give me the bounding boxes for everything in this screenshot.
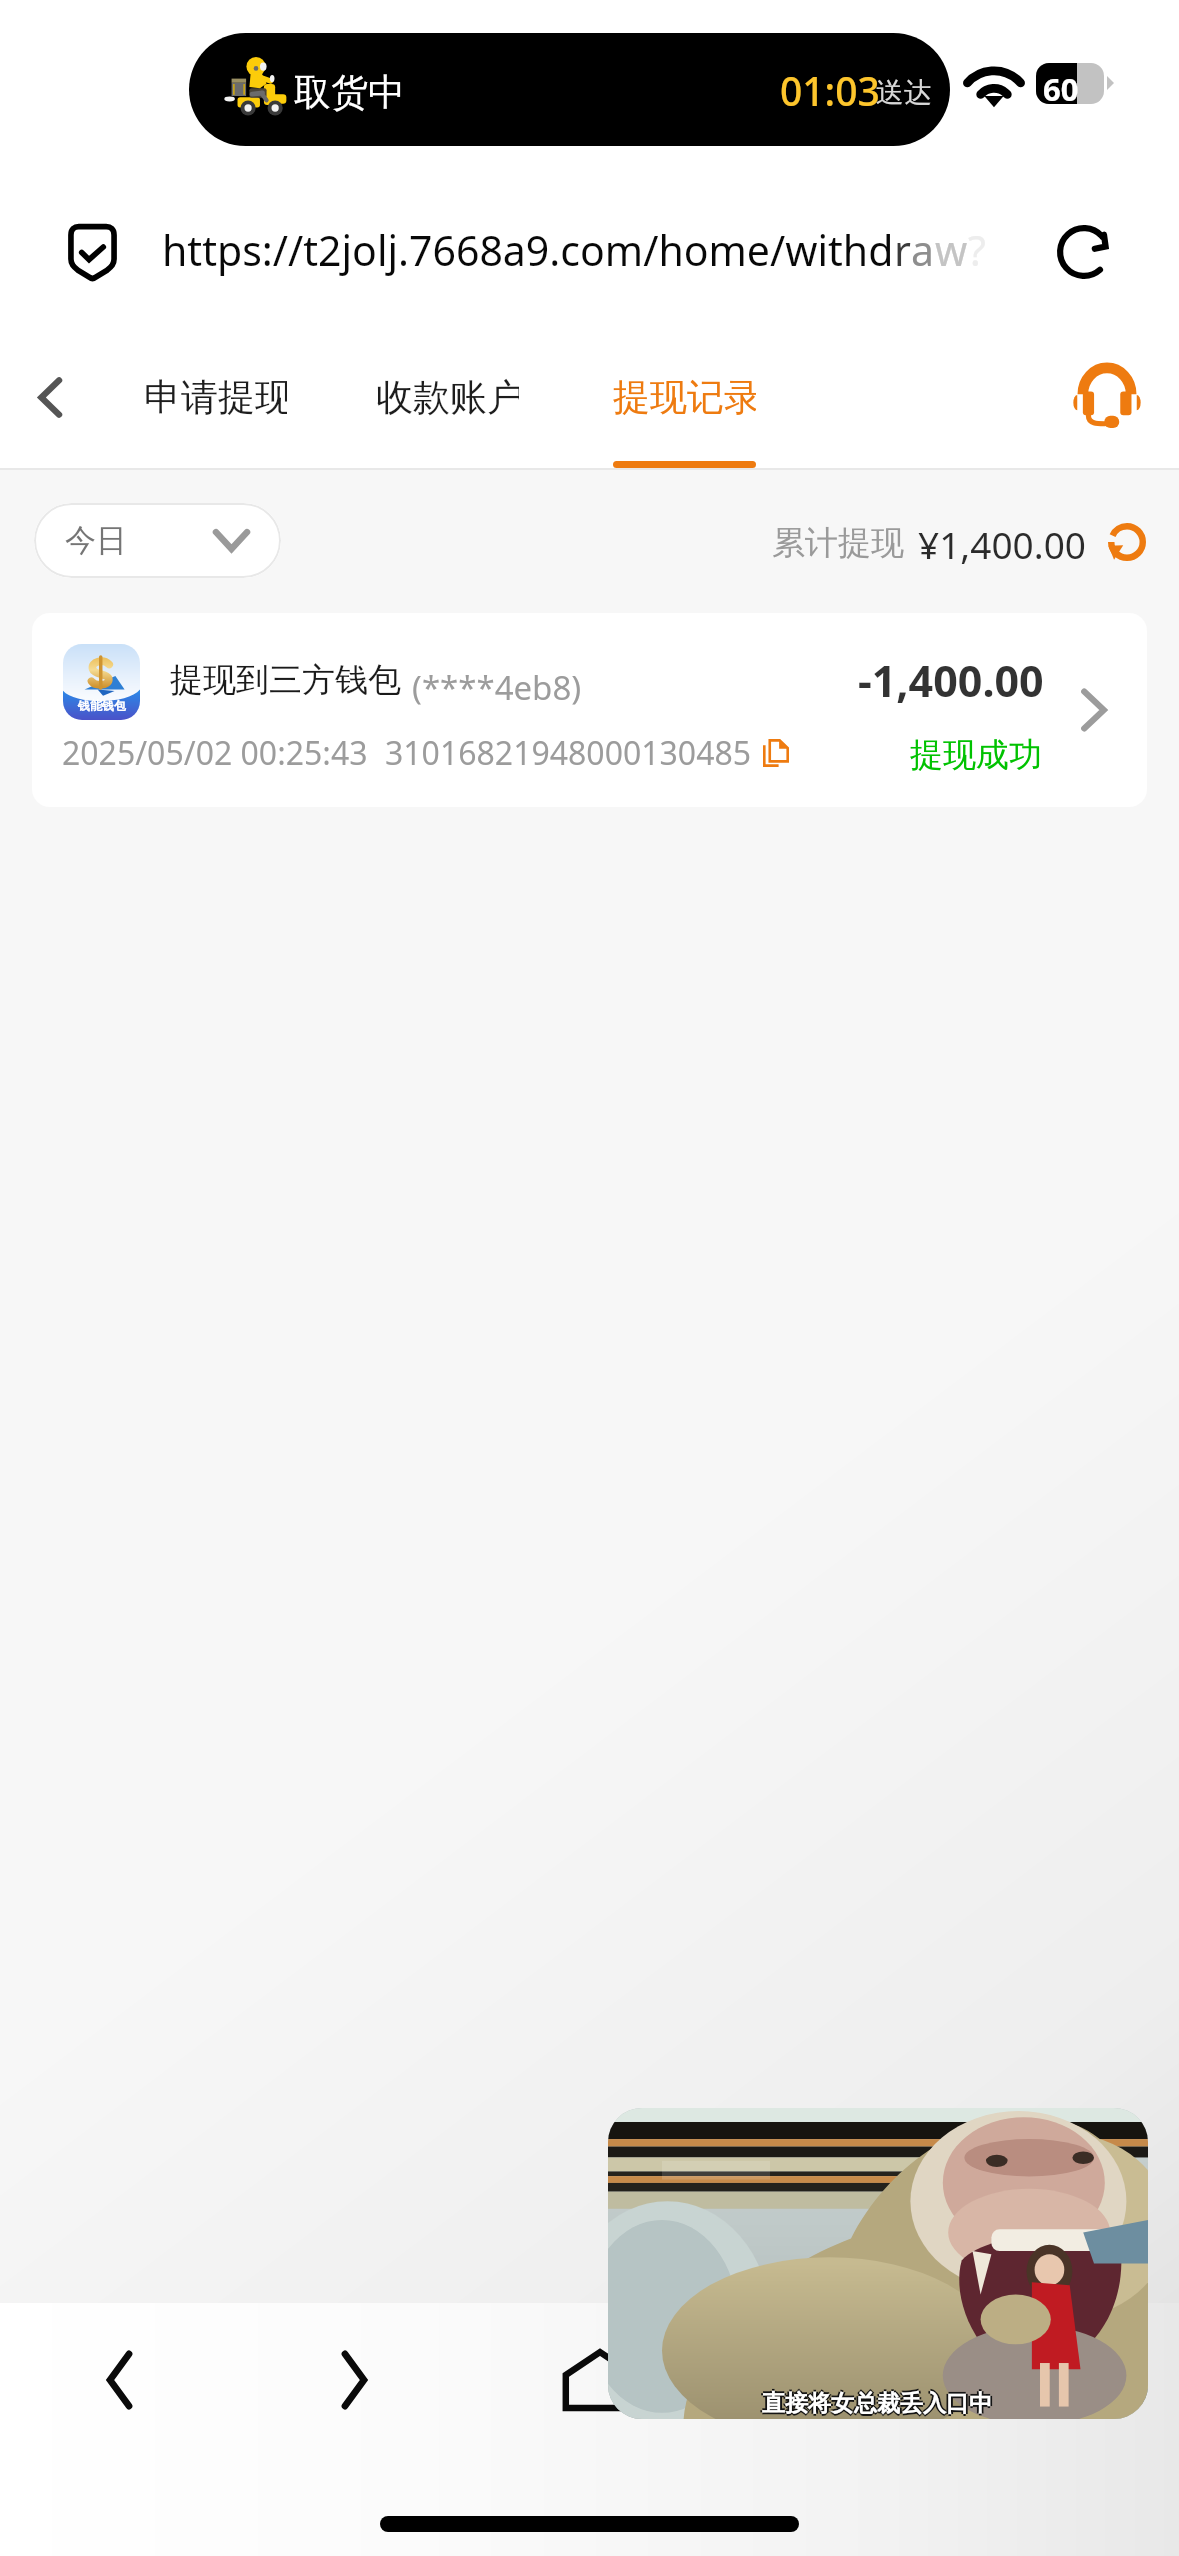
staticText: 取货中 [294,69,405,116]
staticText: 提现成功 [910,734,1042,776]
staticText: 2025/05/02 00:25:43 [62,731,368,775]
staticText: 累计提现 [772,522,904,564]
staticText: 今日 [65,521,127,560]
button[interactable]: Back [2,349,98,445]
staticText: w [935,222,968,278]
staticText: 收款账户 [376,374,519,421]
button[interactable]: Back [59,2320,179,2440]
staticText: 申请提现 [144,374,287,421]
button[interactable]: Forward [294,2320,414,2440]
staticText: ¥1,400.00 [918,519,1086,569]
button[interactable]: 收款账户 [376,374,519,470]
staticText: 钱能钱包 [78,698,126,713]
staticText: a [911,222,935,278]
staticText: 提现到三方钱包 [170,659,401,701]
button[interactable]: 提现记录 [613,374,756,470]
staticText: ? [968,222,986,278]
button[interactable]: Customer service [1052,342,1162,452]
button[interactable]: 钱能钱包 [32,613,1147,807]
button[interactable]: 申请提现 [144,374,287,470]
staticText: 直接将女总裁丢入口中 [760,2389,990,2418]
staticText: (****4eb8) [412,665,582,710]
staticText: r [894,222,911,278]
staticText: 送达 [876,75,932,110]
button[interactable]: Reload [1054,222,1114,282]
staticText: 01:03 [780,64,880,117]
staticText: 直接将女总裁丢入口中 [762,2387,992,2416]
button[interactable]: Copy [748,725,804,781]
staticText: 直接将女总裁丢入口中 [762,2391,992,2419]
button[interactable]: Home [540,2320,660,2440]
staticText: https://t2jolj.7668a9.com/home/withd [162,222,894,278]
button[interactable]: Refresh [1099,514,1155,570]
staticText: 60 [1043,68,1079,110]
button[interactable]: 今日 [34,503,281,578]
staticText: 31016821948000130485 [385,731,752,775]
button[interactable]: Video [608,2108,1148,2419]
staticText: 提现记录 [613,374,756,421]
staticText: -1,400.00 [858,651,1044,710]
staticText: 直接将女总裁丢入口中 [764,2389,994,2418]
staticText: 直接将女总裁丢入口中 [762,2389,992,2418]
